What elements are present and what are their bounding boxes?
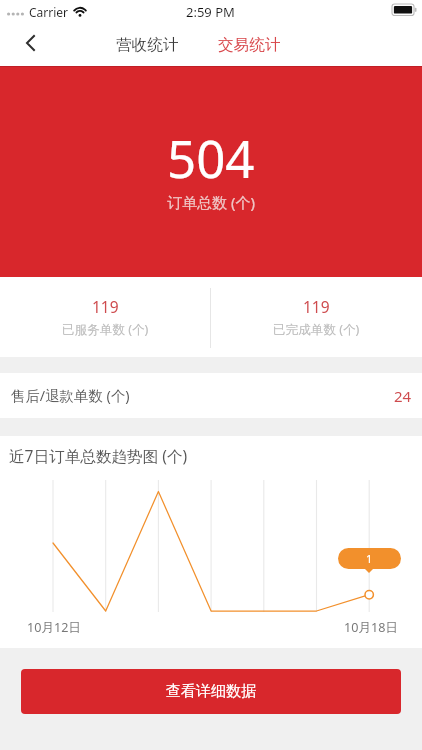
staticText: 已完成单数 (个) [273,321,360,338]
staticText: 1 [366,551,373,566]
staticText: 119 [303,296,330,317]
button[interactable]: 119 [0,277,211,357]
button[interactable]: 查看详细数据 [21,669,401,714]
button[interactable]: 营收统计 [111,30,184,60]
staticText: 交易统计 [218,35,281,55]
staticText: Carrier [29,4,69,20]
staticText: 售后/退款单数 (个) [11,386,130,406]
staticText: 504 [167,123,255,192]
staticText: 2:59 PM [186,3,235,21]
button[interactable]: 售后/退款单数 (个) [0,373,422,418]
staticText: 24 [394,386,412,406]
button[interactable]: 交易统计 [213,30,286,60]
staticText: 已服务单数 (个) [62,321,149,338]
staticText: 119 [92,296,119,317]
staticText: 营收统计 [116,35,179,55]
staticText: 查看详细数据 [166,682,256,701]
button[interactable]: Back [13,26,47,60]
staticText: 10月18日 [344,619,399,636]
button[interactable]: 119 [211,277,422,357]
staticText: 10月12日 [27,619,82,636]
staticText: 订单总数 (个) [167,192,255,212]
staticText: 近7日订单总数趋势图 (个) [9,445,188,466]
